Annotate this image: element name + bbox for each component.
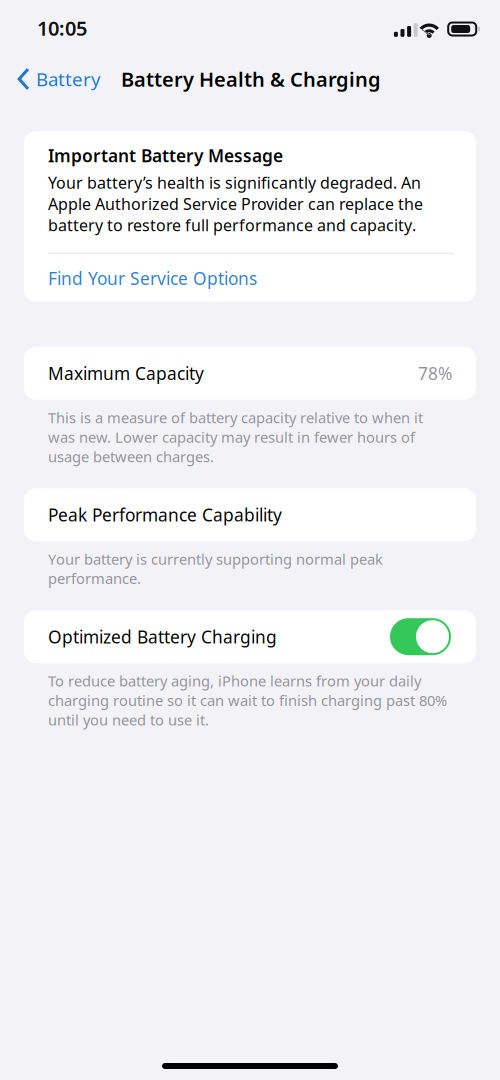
staticText: Peak Performance Capability <box>48 503 282 526</box>
staticText: To reduce battery aging, iPhone learns f… <box>48 671 447 730</box>
staticText: Your battery’s health is significantly d… <box>48 172 423 236</box>
staticText: 78% <box>418 362 452 385</box>
staticText: Battery <box>36 67 101 91</box>
button[interactable]: Peak Performance Capability <box>0 488 500 541</box>
staticText: Find Your Service Options <box>48 267 257 290</box>
button[interactable]: Optimized Battery Charging <box>390 618 451 655</box>
staticText: Optimized Battery Charging <box>48 625 277 648</box>
button[interactable]: Find Your Service Options <box>48 267 454 294</box>
staticText: 10:05 <box>37 15 87 41</box>
staticText: Maximum Capacity <box>48 362 204 385</box>
staticText: This is a measure of battery capacity re… <box>48 408 423 466</box>
button[interactable]: Battery <box>0 57 121 101</box>
staticText: Your battery is currently supporting nor… <box>48 549 383 588</box>
staticText: Battery Health & Charging <box>121 66 381 92</box>
staticText: Important Battery Message <box>48 144 283 167</box>
